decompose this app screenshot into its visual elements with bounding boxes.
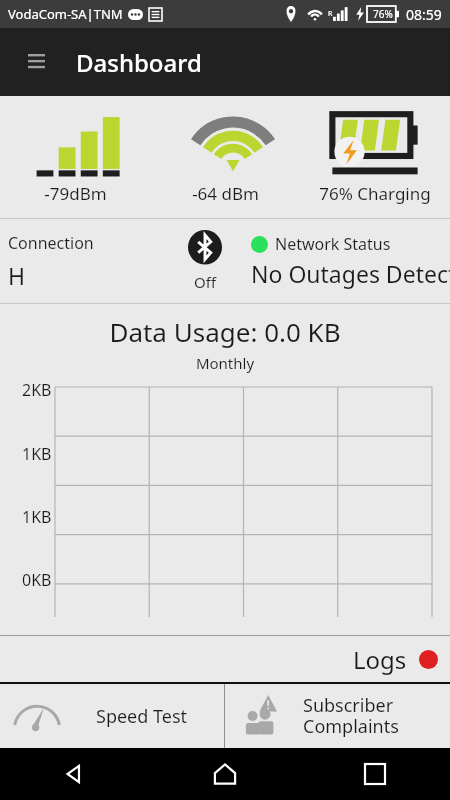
- button[interactable]: -79dBm: [0, 96, 150, 218]
- staticText: Dashboard: [76, 46, 202, 79]
- staticText: 1KB: [22, 443, 52, 465]
- staticText: R: [328, 9, 333, 19]
- staticText: Speed Test: [96, 704, 188, 729]
- staticText: 2KB: [22, 379, 52, 401]
- button[interactable]: 76% Charging: [300, 96, 450, 218]
- staticText: 1KB: [22, 506, 52, 528]
- button[interactable]: Network Status: [251, 219, 450, 303]
- staticText: Monthly: [0, 353, 450, 373]
- staticText: Connection: [8, 232, 94, 254]
- button[interactable]: Home: [150, 748, 300, 800]
- staticText: Logs: [353, 643, 407, 676]
- button[interactable]: Logs: [0, 636, 450, 682]
- button[interactable]: Subscriber Complaints: [225, 684, 450, 748]
- staticText: H: [8, 260, 26, 291]
- staticText: 08:59: [406, 5, 442, 24]
- staticText: VodaCom-SA|TNM: [8, 5, 123, 23]
- staticText: No Outages Detected: [251, 258, 450, 289]
- staticText: Off: [194, 272, 217, 292]
- button[interactable]: -64 dBm: [150, 96, 300, 218]
- staticText: Network Status: [275, 233, 391, 255]
- staticText: -64 dBm: [192, 182, 259, 205]
- button[interactable]: Connection: [0, 219, 159, 303]
- button[interactable]: Speed Test: [0, 684, 224, 748]
- staticText: 76%: [373, 7, 393, 21]
- staticText: 0KB: [22, 569, 52, 591]
- button[interactable]: Back: [0, 748, 150, 800]
- staticText: -79dBm: [44, 182, 107, 205]
- button[interactable]: Open navigation menu: [14, 40, 58, 84]
- staticText: Subscriber Complaints: [303, 693, 399, 739]
- button[interactable]: Bluetooth Off: [159, 219, 251, 303]
- button[interactable]: Recent apps: [300, 748, 450, 800]
- staticText: 76% Charging: [319, 182, 431, 205]
- staticText: Data Usage: 0.0 KB: [0, 314, 450, 349]
